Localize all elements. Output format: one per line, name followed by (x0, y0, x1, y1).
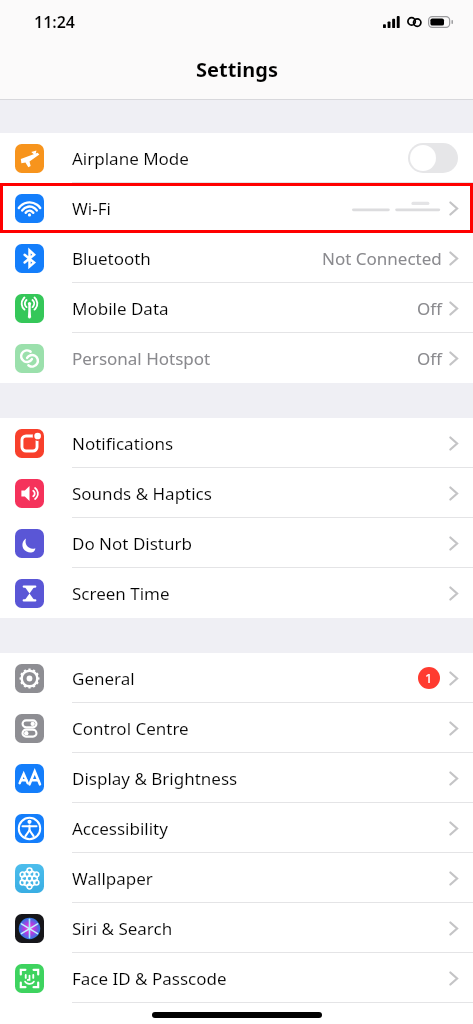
staticText: Wallpaper (72, 867, 153, 890)
button[interactable]: Sounds & Haptics (0, 468, 473, 518)
staticText: General (72, 667, 135, 690)
button[interactable]: Wi-Fi (0, 183, 473, 233)
staticText: Bluetooth (72, 247, 151, 270)
staticText: Face ID & Passcode (72, 967, 227, 990)
button[interactable]: Accessibility (0, 803, 473, 853)
staticText: Off (417, 347, 442, 370)
button[interactable]: Airplane Mode toggle (408, 143, 458, 173)
button[interactable]: Notifications (0, 418, 473, 468)
button[interactable]: Display & Brightness (0, 753, 473, 803)
button[interactable]: Mobile Data (0, 283, 473, 333)
staticText: Accessibility (72, 817, 168, 840)
staticText: Control Centre (72, 717, 189, 740)
staticText: Siri & Search (72, 917, 173, 940)
staticText: Notifications (72, 432, 174, 455)
button[interactable]: Siri & Search (0, 903, 473, 953)
staticText: Personal Hotspot (72, 347, 211, 370)
staticText: 1 (425, 669, 433, 687)
staticText: Wi-Fi (72, 197, 111, 220)
button[interactable]: Do Not Disturb (0, 518, 473, 568)
button[interactable]: Control Centre (0, 703, 473, 753)
staticText: Do Not Disturb (72, 532, 192, 555)
staticText: Settings (196, 56, 278, 83)
staticText: Not Connected (322, 247, 442, 270)
staticText: Airplane Mode (72, 147, 189, 170)
staticText: Sounds & Haptics (72, 482, 212, 505)
button[interactable]: Screen Time (0, 568, 473, 618)
button[interactable]: General (0, 653, 473, 703)
staticText: Mobile Data (72, 297, 169, 320)
button[interactable]: Face ID & Passcode (0, 953, 473, 1003)
button[interactable]: Wallpaper (0, 853, 473, 903)
staticText: 11:24 (34, 11, 76, 33)
staticText: Display & Brightness (72, 767, 238, 790)
button[interactable]: Bluetooth (0, 233, 473, 283)
staticText: Off (417, 297, 442, 320)
staticText: Screen Time (72, 582, 170, 605)
button[interactable]: Airplane Mode (0, 133, 473, 183)
button[interactable]: Personal Hotspot (0, 333, 473, 383)
